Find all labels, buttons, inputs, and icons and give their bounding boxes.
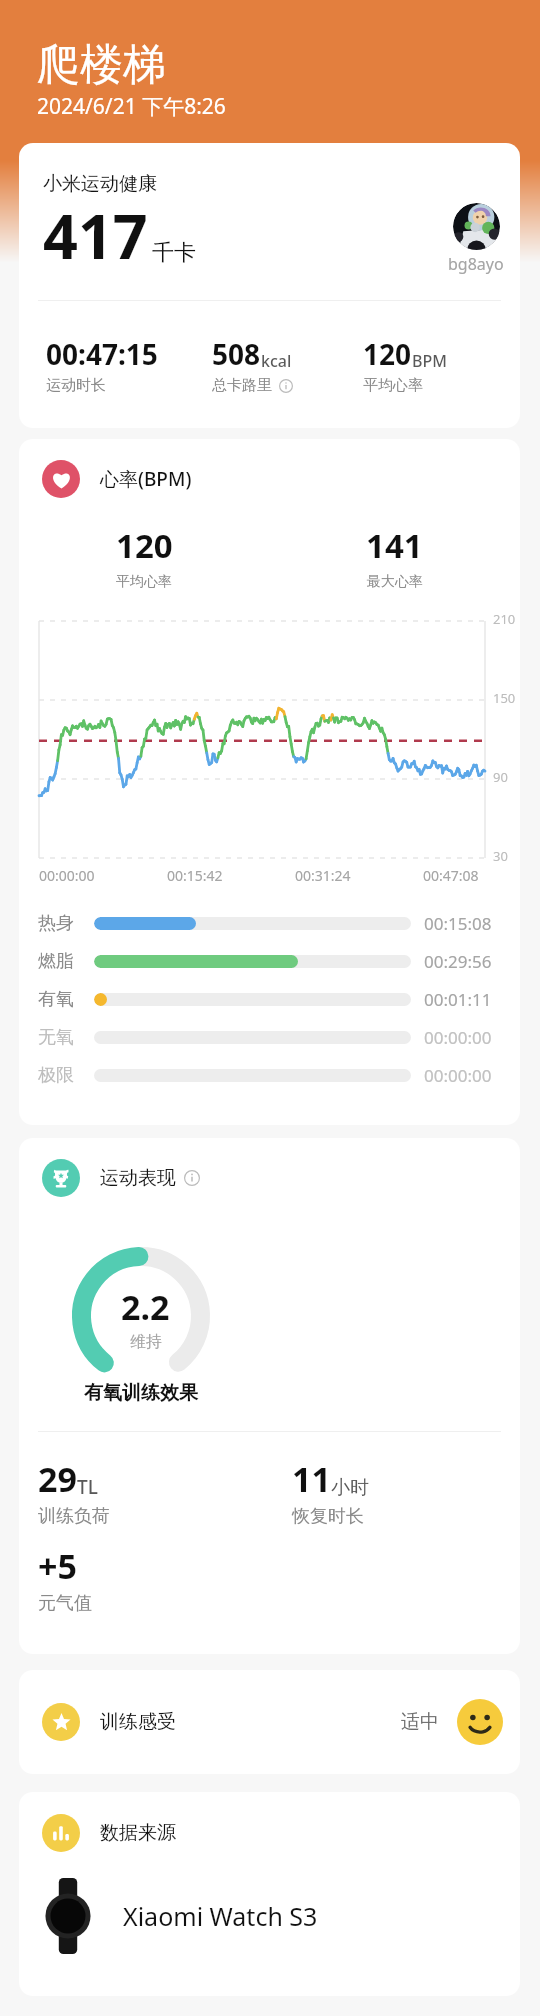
staticText: 元气值	[38, 1592, 92, 1615]
button[interactable]: 训练感受	[19, 1670, 520, 1774]
staticText: 00:31:24	[295, 866, 423, 885]
staticText: 恢复时长	[292, 1505, 364, 1528]
staticText: 00:00:00	[424, 1026, 492, 1049]
button[interactable]: Xiaomi Watch S3	[19, 1852, 520, 1996]
staticText: 维持	[130, 1332, 162, 1352]
staticText: 训练感受	[100, 1710, 176, 1734]
staticText: 热身	[38, 912, 94, 935]
staticText: 210	[493, 610, 516, 628]
staticText: 有氧训练效果	[84, 1381, 198, 1405]
staticText: 总卡路里	[212, 376, 272, 395]
staticText: kcal	[261, 350, 292, 372]
staticText: 小时	[331, 1476, 369, 1500]
staticText: 00:00:00	[39, 866, 167, 885]
staticText: 极限	[38, 1064, 94, 1087]
staticText: BPM	[412, 350, 447, 372]
staticText: 90	[493, 768, 508, 786]
staticText: 2024/6/21 下午8:26	[37, 92, 226, 121]
staticText: 00:15:42	[167, 866, 295, 885]
staticText: 120	[116, 523, 173, 568]
staticText: 2.2	[121, 1284, 170, 1330]
staticText: 29	[38, 1456, 77, 1502]
staticText: TL	[77, 1474, 98, 1500]
staticText: 平均心率	[363, 376, 423, 395]
staticText: 00:29:56	[424, 950, 492, 973]
staticText: 00:15:08	[424, 912, 492, 935]
staticText: 120	[363, 335, 412, 373]
staticText: 适中	[401, 1710, 439, 1734]
staticText: 150	[493, 689, 516, 707]
staticText: 00:47:08	[423, 866, 479, 885]
staticText: 141	[366, 523, 423, 568]
staticText: 燃脂	[38, 950, 94, 973]
staticText: 00:01:11	[424, 988, 492, 1011]
staticText: Xiaomi Watch S3	[123, 1899, 318, 1933]
staticText: 运动时长	[46, 376, 106, 395]
staticText: 运动表现	[100, 1166, 176, 1190]
staticText: 417	[43, 194, 148, 277]
staticText: 508	[212, 335, 261, 373]
staticText: 爬楼梯	[37, 38, 166, 92]
staticText: bg8ayo	[448, 253, 504, 275]
staticText: 11	[292, 1456, 331, 1502]
staticText: 最大心率	[367, 573, 423, 591]
staticText: 心率(BPM)	[100, 466, 192, 492]
staticText: 有氧	[38, 988, 94, 1011]
staticText: 平均心率	[116, 573, 172, 591]
staticText: 30	[493, 847, 508, 865]
staticText: 00:00:00	[424, 1064, 492, 1087]
staticText: 小米运动健康	[43, 172, 157, 196]
staticText: 数据来源	[100, 1821, 176, 1845]
staticText: 无氧	[38, 1026, 94, 1049]
staticText: +5	[38, 1543, 77, 1589]
staticText: 00:47:15	[46, 335, 158, 373]
staticText: 训练负荷	[38, 1505, 110, 1528]
staticText: 千卡	[152, 239, 196, 267]
